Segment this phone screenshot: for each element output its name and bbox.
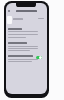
button[interactable]: Toggle setting: [36, 56, 42, 59]
